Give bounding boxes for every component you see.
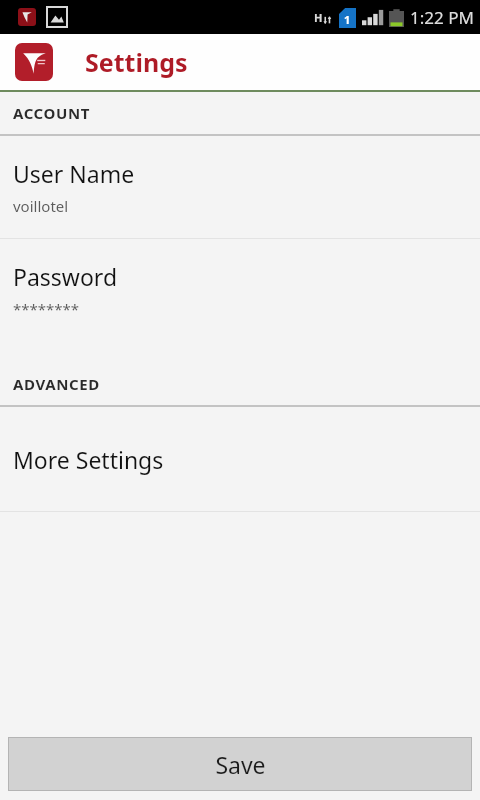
staticText: User Name: [13, 158, 135, 189]
button[interactable]: Save: [9, 738, 471, 790]
staticText: 1:22 PM: [410, 6, 474, 29]
staticText: More Settings: [13, 444, 164, 475]
staticText: Password: [13, 261, 118, 292]
button[interactable]: App logo: [15, 43, 53, 81]
staticText: H: [314, 10, 323, 25]
button[interactable]: Password: [0, 239, 480, 341]
staticText: ACCOUNT: [13, 103, 90, 123]
staticText: 1: [344, 12, 351, 27]
staticText: Save: [215, 749, 266, 780]
button[interactable]: User Name: [0, 136, 480, 238]
button[interactable]: More Settings: [0, 407, 480, 511]
staticText: Settings: [85, 45, 188, 79]
staticText: ********: [13, 299, 80, 319]
staticText: voillotel: [13, 196, 69, 216]
staticText: ADVANCED: [13, 374, 100, 394]
